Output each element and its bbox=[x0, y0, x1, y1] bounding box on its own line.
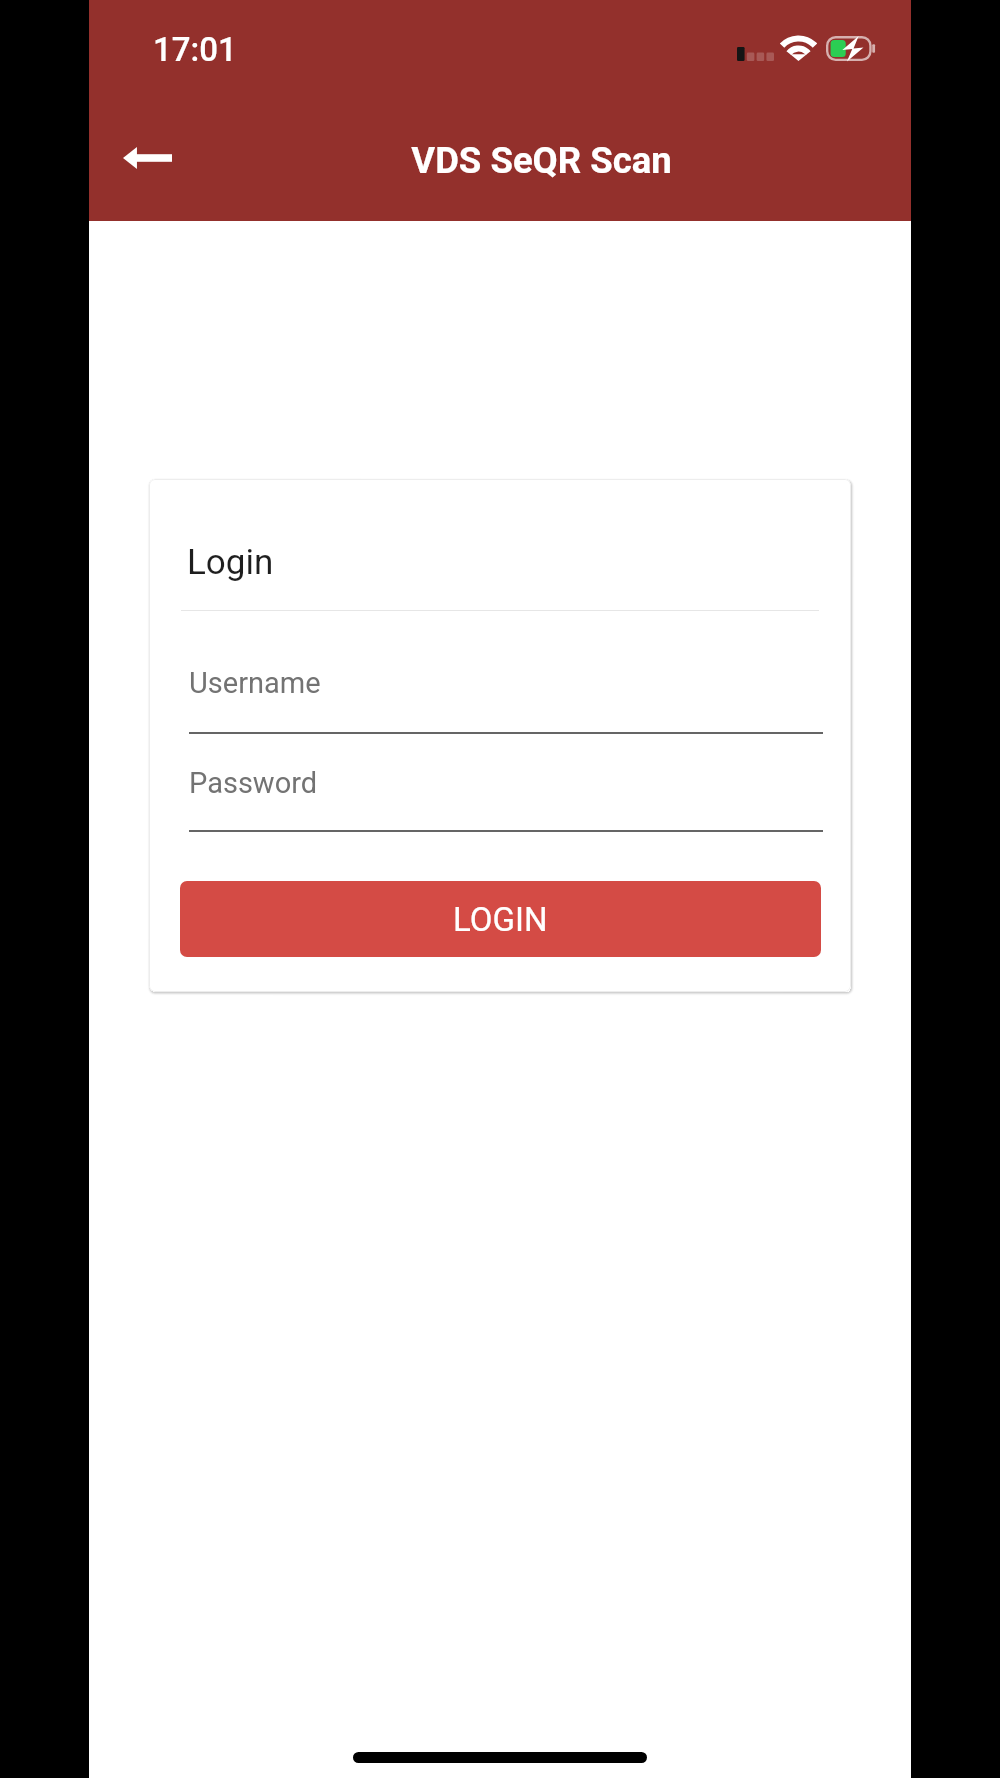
staticText: VDS SeQR Scan bbox=[411, 139, 672, 182]
staticText: Login bbox=[187, 542, 274, 583]
staticText: LOGIN bbox=[453, 900, 548, 939]
staticText: 17:01 bbox=[153, 30, 237, 69]
button[interactable]: Username bbox=[189, 655, 823, 734]
button[interactable]: Back bbox=[109, 120, 185, 196]
staticText: Username bbox=[189, 666, 321, 700]
button[interactable]: Password bbox=[189, 755, 823, 832]
button[interactable]: LOGIN bbox=[180, 881, 821, 957]
staticText: Password bbox=[189, 766, 318, 800]
